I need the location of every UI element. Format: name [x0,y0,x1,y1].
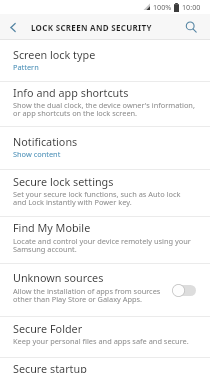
button[interactable]: Find My Mobile [0,217,210,263]
staticText: Pattern [13,62,39,72]
staticText: Secure lock settings [13,174,114,189]
staticText: Secure startup [13,361,87,373]
button[interactable] [180,16,202,38]
staticText: Set your secure lock functions, such as … [13,189,181,207]
staticText: Show the dual clock, the device owner's … [13,100,195,118]
staticText: Keep your personal files and apps safe a… [13,336,189,346]
staticText: 10:00 [182,2,201,12]
button[interactable] [0,14,26,40]
button[interactable]: Info and app shortcuts [0,82,210,126]
button[interactable]: Unknown sources [0,264,210,316]
button[interactable]: Notifications [0,127,210,169]
staticText: Notifications [13,134,78,149]
button[interactable]: Secure Folder [0,317,210,357]
staticText: Allow the installation of apps from sour… [13,286,163,304]
staticText: Locate and control your device remotely … [13,236,191,254]
button[interactable]: Secure lock settings [0,170,210,216]
staticText: 100% [153,2,172,12]
staticText: Screen lock type [13,47,96,62]
staticText: Secure Folder [13,321,83,336]
staticText: Unknown sources [13,270,104,285]
staticText: Find My Mobile [13,220,91,235]
staticText: Show content [13,149,61,159]
staticText: LOCK SCREEN AND SECURITY [31,22,152,33]
button[interactable]: Screen lock type [0,40,210,81]
staticText: Info and app shortcuts [13,85,129,100]
button[interactable]: Secure startup [0,358,210,373]
